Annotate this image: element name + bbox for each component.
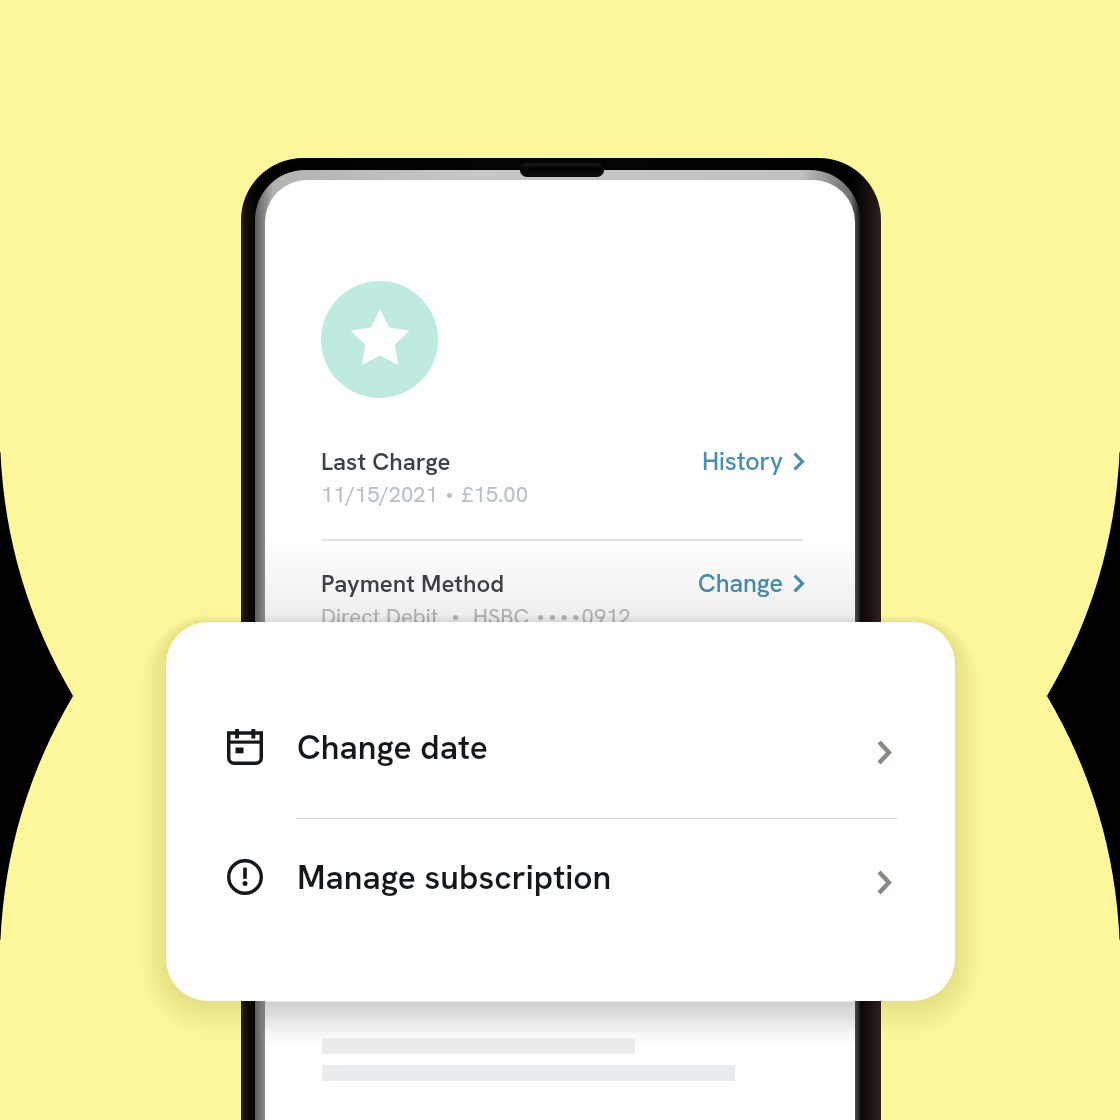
staticText: Payment Method <box>321 568 505 599</box>
staticText: Last Charge <box>321 446 451 477</box>
staticText: Change <box>698 567 784 600</box>
staticText: History <box>702 445 784 478</box>
button[interactable]: Manage subscription <box>166 845 955 909</box>
staticText: Manage subscription <box>297 855 612 899</box>
button[interactable]: History <box>595 441 803 481</box>
staticText: Change date <box>297 725 488 769</box>
button[interactable]: Change date <box>166 715 955 779</box>
staticText: Direct Debit • HSBC ••••0912 <box>321 601 631 630</box>
staticText: 11/15/2021 • £15.00 <box>321 479 529 508</box>
button[interactable]: Change <box>595 563 803 603</box>
